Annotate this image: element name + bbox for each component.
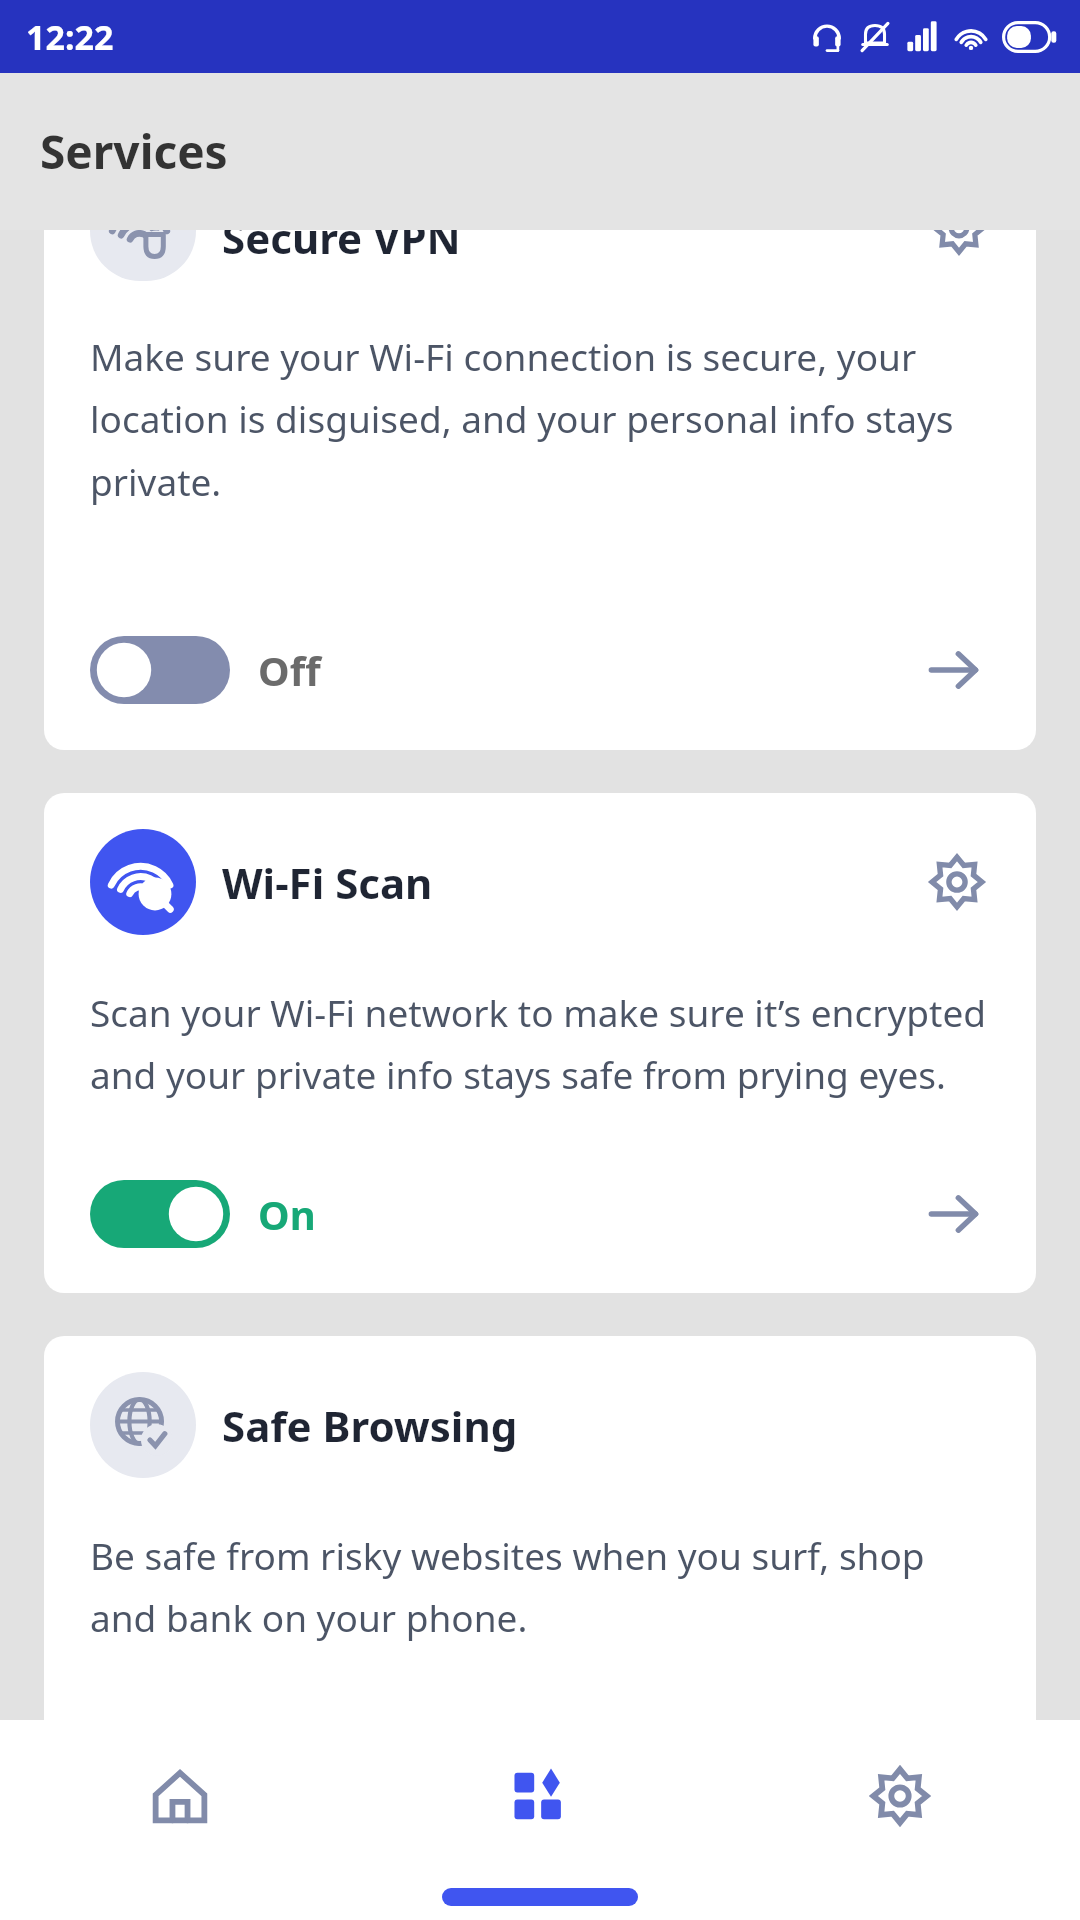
button[interactable]: Wi-Fi Scan xyxy=(44,793,1036,1293)
staticText: Safe Browsing xyxy=(222,1397,518,1454)
button[interactable]: Off xyxy=(90,636,321,704)
staticText: Scan your Wi-Fi network to make sure it’… xyxy=(90,987,990,1100)
button[interactable]: Wi-Fi Scan settings xyxy=(924,849,990,915)
button[interactable]: Settings xyxy=(720,1720,1080,1888)
staticText: Services xyxy=(40,120,228,183)
staticText: Off xyxy=(258,643,321,697)
staticText: 12:22 xyxy=(26,14,114,60)
staticText: Make sure your Wi-Fi connection is secur… xyxy=(90,331,990,507)
button[interactable]: Open Secure VPN xyxy=(918,634,990,706)
button[interactable]: Secure VPN xyxy=(44,230,1036,750)
button[interactable]: Services xyxy=(360,1720,720,1888)
staticText: On xyxy=(258,1187,316,1241)
staticText: Be safe from risky websites when you sur… xyxy=(90,1530,990,1643)
button[interactable]: Home xyxy=(0,1720,360,1888)
button[interactable]: Secure VPN settings xyxy=(928,230,990,259)
button[interactable]: Open Wi-Fi Scan xyxy=(918,1178,990,1250)
button[interactable]: On xyxy=(90,1180,316,1248)
staticText: Secure VPN xyxy=(222,230,461,266)
button[interactable]: Safe Browsing xyxy=(44,1336,1036,1720)
staticText: Wi-Fi Scan xyxy=(222,854,433,911)
